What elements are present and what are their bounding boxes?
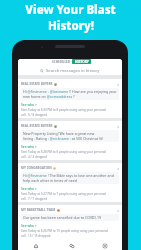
staticText: Sent Today at 5:33 PM to 8 people using … (21, 108, 107, 117)
button[interactable]: SCHEDULED (50, 59, 72, 64)
staticText: See who > (21, 102, 37, 106)
button[interactable]: HISTORY (72, 59, 91, 64)
staticText: History! (48, 18, 94, 34)
staticText: REAL ESTATE BUYERS (21, 124, 53, 128)
staticText: MY BASKETBALL TEAM (21, 208, 56, 212)
staticText: Sent Today at 5:28 PM to 6 people using … (21, 150, 107, 159)
button[interactable]: Messages (66, 240, 78, 250)
button[interactable]: REAL ESTATE BUYERS (18, 79, 122, 118)
staticText: New Property Listing! We have a great ne… (23, 131, 104, 141)
staticText: Sent Today at 5:26 PM to 15 people using… (21, 229, 108, 238)
staticText: MY CONGREGATION (21, 166, 52, 170)
staticText: HISTORY (75, 60, 89, 64)
button[interactable]: Search messages in history (18, 66, 122, 75)
staticText: See who > (21, 223, 37, 227)
button[interactable]: MY CONGREGATION (18, 163, 122, 202)
button[interactable]: Notifications (30, 240, 42, 250)
staticText: Search messages in history (46, 68, 100, 74)
staticText: REAL ESTATE BUYERS (21, 82, 53, 86)
staticText: See who > (21, 186, 37, 190)
button[interactable]: Settings (99, 240, 111, 250)
button[interactable]: MY BASKETBALL TEAM (18, 205, 122, 244)
staticText: Hi @firstname ! The Bible says to love o… (23, 173, 114, 183)
staticText: Hi @firstname - @lastname !! How are you… (23, 89, 117, 99)
staticText: Sent Today at 5:27 PM to 7 people using … (21, 192, 107, 201)
staticText: View Your Blast (25, 2, 116, 18)
button[interactable]: REAL ESTATE BUYERS (18, 121, 122, 160)
staticText: See who > (21, 144, 37, 148)
staticText: SCHEDULED (52, 60, 71, 64)
staticText: Our game has been cancelled due to COVID… (23, 215, 102, 220)
